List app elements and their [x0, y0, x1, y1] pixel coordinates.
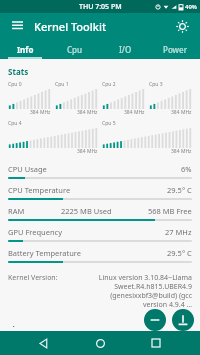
staticText: Cpu 3 [149, 81, 163, 88]
button[interactable]: Home [88, 331, 112, 355]
button[interactable]: Power [150, 39, 200, 59]
staticText: Kernel Version: [8, 273, 58, 283]
button[interactable]: Back [32, 331, 56, 355]
staticText: Cpu 5 [102, 120, 116, 127]
staticText: THU 7:05 PM [79, 2, 122, 12]
staticText: Power [163, 44, 188, 55]
button[interactable]: Cpu [50, 39, 100, 59]
staticText: Cpu 1 [55, 81, 69, 88]
button[interactable]: Export [172, 309, 194, 331]
staticText: 6% [181, 164, 192, 174]
staticText: CPU Temperature [8, 185, 71, 195]
button[interactable]: Kernel Version: [0, 266, 200, 313]
staticText: 29.5° C [167, 185, 192, 195]
button[interactable]: Battery Temperature [0, 245, 200, 266]
staticText: Info [17, 44, 34, 55]
button[interactable]: CPU Usage [0, 161, 200, 182]
button[interactable]: Open navigation menu [8, 17, 26, 35]
button[interactable]: Recent apps [144, 331, 168, 355]
staticText: I/O [119, 44, 132, 55]
button[interactable]: Toggle brightness [172, 16, 192, 36]
button[interactable]: Info [0, 39, 50, 59]
staticText: 384 MHz [171, 148, 192, 155]
staticText: Cpu 4 [8, 120, 22, 127]
button[interactable]: GPU Frequency [0, 224, 200, 245]
staticText: 384 MHz [77, 148, 98, 155]
staticText: 27 MHz [165, 227, 192, 237]
staticText: 384 MHz [30, 109, 51, 116]
button[interactable]: I/O [100, 39, 150, 59]
staticText: 384 MHz [124, 109, 145, 116]
staticText: Battery Temperature [8, 248, 82, 258]
staticText: Stats [8, 66, 29, 77]
staticText: 568 MB Free [148, 206, 192, 216]
button[interactable]: RAM [0, 203, 200, 224]
staticText: CPU Usage [8, 164, 47, 174]
staticText: Cpu [67, 44, 83, 55]
staticText: 49% [185, 3, 197, 11]
button[interactable]: CPU Temperature [0, 182, 200, 203]
staticText: 384 MHz [77, 109, 98, 116]
staticText: Cpu 0 [8, 81, 22, 88]
button[interactable]: Minimize [144, 309, 166, 331]
staticText: GPU Frequency [8, 227, 63, 237]
staticText: Kernel Toolkit [34, 19, 107, 34]
staticText: Linux version 3.10.84~LlamaSweet.R4.h815… [96, 273, 192, 309]
staticText: Time In States [8, 324, 65, 327]
staticText: 2225 MB Used [61, 206, 112, 216]
staticText: RAM [8, 206, 25, 216]
staticText: 384 MHz [171, 109, 192, 116]
staticText: Cpu 2 [102, 81, 116, 88]
staticText: 29.5° C [167, 248, 192, 258]
